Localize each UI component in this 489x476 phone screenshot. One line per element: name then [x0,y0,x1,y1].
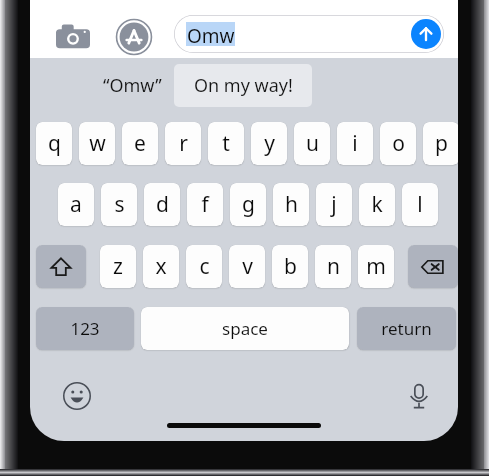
button[interactable]: g [230,183,266,226]
button[interactable]: s [101,183,137,226]
button[interactable]: j [316,183,352,226]
button[interactable]: f [187,183,223,226]
button[interactable]: “Omw” [70,64,194,107]
button[interactable]: r [165,122,201,165]
button[interactable]: x [143,245,179,288]
staticText: i [352,129,358,158]
staticText: return [381,317,432,340]
staticText: d [156,190,169,219]
staticText: z [113,252,123,281]
staticText: f [201,190,209,219]
staticText: u [306,129,319,158]
staticText: x [155,252,167,281]
button[interactable]: n [315,245,351,288]
button[interactable]: Shift [36,245,86,288]
staticText: b [284,252,297,281]
button[interactable]: On my way! [174,64,312,107]
button[interactable]: c [186,245,222,288]
staticText: l [417,190,423,219]
staticText: r [179,129,188,158]
staticText: n [327,252,340,281]
button[interactable]: i [337,122,373,165]
staticText: 123 [70,317,100,340]
button[interactable]: y [251,122,287,165]
button[interactable]: t [208,122,244,165]
staticText: y [264,129,275,158]
button[interactable]: d [144,183,180,226]
staticText: k [371,190,383,219]
staticText: p [435,129,448,158]
staticText: Omw [187,23,235,49]
staticText: o [392,129,405,158]
staticText: m [366,252,386,281]
staticText: q [48,129,61,158]
button[interactable]: a [58,183,94,226]
staticText: e [134,129,146,158]
staticText: s [114,190,125,219]
staticText: v [242,252,253,281]
button[interactable]: Send [411,19,441,49]
staticText: On my way! [194,73,293,98]
button[interactable]: b [272,245,308,288]
staticText: t [222,129,230,158]
staticText: w [89,129,106,158]
button[interactable]: Emoji [59,378,95,414]
staticText: a [70,190,82,219]
staticText: g [242,190,255,219]
button[interactable]: Omw [174,15,444,53]
button[interactable]: q [36,122,72,165]
button[interactable]: k [359,183,395,226]
button[interactable]: return [357,307,456,350]
button[interactable]: l [402,183,438,226]
button[interactable]: p [423,122,458,165]
button[interactable]: Backspace [408,245,458,288]
button[interactable]: Dictation [401,378,437,414]
staticText: h [285,190,298,219]
button[interactable]: o [380,122,416,165]
button[interactable]: v [229,245,265,288]
button[interactable]: u [294,122,330,165]
button[interactable]: Camera [52,16,94,58]
staticText: c [199,252,210,281]
staticText: “Omw” [103,73,162,98]
staticText: j [331,190,337,219]
button[interactable]: e [122,122,158,165]
button[interactable]: App Store [113,16,155,58]
button[interactable]: z [100,245,136,288]
button[interactable]: 123 [36,307,134,350]
button[interactable]: w [79,122,115,165]
staticText: space [222,317,268,340]
button[interactable]: space [141,307,349,350]
button[interactable]: m [358,245,394,288]
button[interactable]: h [273,183,309,226]
